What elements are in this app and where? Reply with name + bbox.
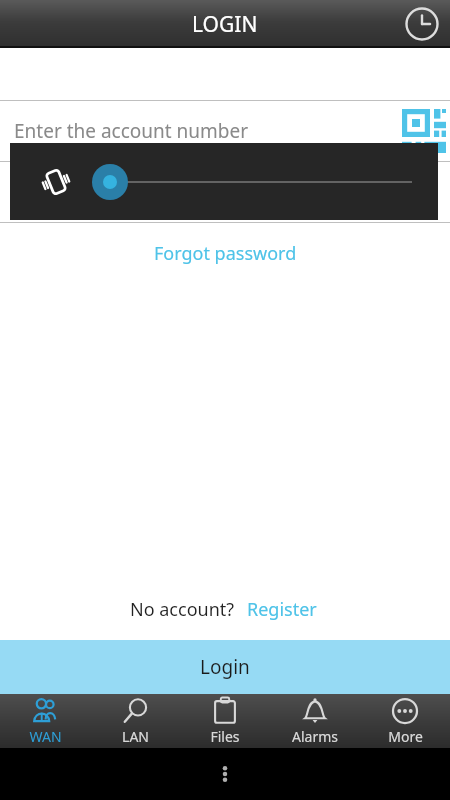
button[interactable] [0,162,450,222]
staticText: Enter the account number [14,118,249,144]
staticText: LOGIN [192,10,258,39]
button[interactable]: Scan QR code [401,108,447,154]
staticText: LAN [122,727,149,746]
staticText: No account? [130,597,235,622]
button[interactable]: Register [243,595,321,624]
button[interactable]: Enter the account number [0,101,450,161]
button[interactable]: Menu [203,752,247,796]
button[interactable]: Ringer mode [34,160,78,204]
button[interactable]: LAN [90,694,180,748]
button[interactable]: WAN [0,694,90,748]
button[interactable]: History [400,2,444,46]
staticText: More [388,727,423,746]
button[interactable]: Alarms [270,694,360,748]
staticText: Login [200,654,250,680]
staticText: Files [210,727,240,746]
button[interactable] [88,160,412,204]
staticText: WAN [29,727,62,746]
staticText: Forgot password [154,241,297,266]
button[interactable]: Files [180,694,270,748]
button[interactable]: More [360,694,450,748]
staticText: Alarms [292,727,338,746]
staticText: Register [247,597,317,622]
button[interactable]: Forgot password [144,237,307,270]
button[interactable]: Login [0,640,450,694]
